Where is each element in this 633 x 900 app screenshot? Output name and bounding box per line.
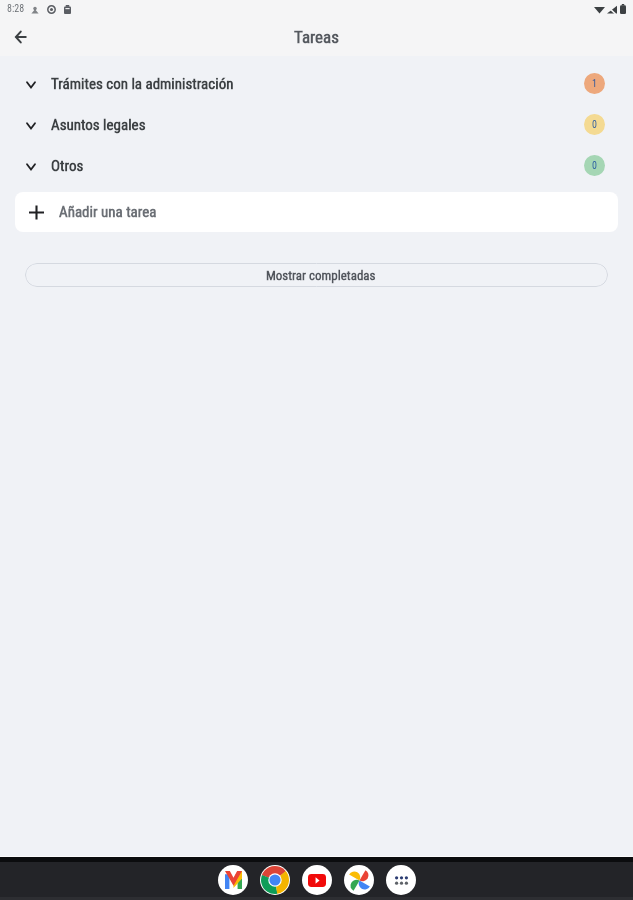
button[interactable]: Gmail [218, 865, 248, 895]
button[interactable]: Trámites con la administración [0, 63, 633, 104]
staticText: Mostrar completadas [266, 268, 376, 283]
staticText: Asuntos legales [51, 116, 146, 134]
button[interactable]: Mostrar completadas [25, 263, 608, 287]
button[interactable]: Back [1, 17, 41, 57]
staticText: 0 [592, 119, 597, 131]
staticText: 1 [592, 78, 597, 90]
button[interactable]: Chrome [260, 865, 290, 895]
button[interactable]: Añadir una tarea [15, 192, 618, 232]
staticText: Otros [51, 157, 84, 175]
button[interactable]: All apps [386, 865, 416, 895]
button[interactable]: YouTube [302, 865, 332, 895]
staticText: Tareas [294, 27, 339, 47]
button[interactable]: Google Photos [344, 865, 374, 895]
staticText: 0 [592, 160, 597, 172]
staticText: Añadir una tarea [59, 203, 157, 221]
staticText: Trámites con la administración [51, 75, 234, 93]
button[interactable]: Asuntos legales [0, 104, 633, 145]
button[interactable]: Otros [0, 145, 633, 186]
staticText: 8:28 [7, 3, 25, 15]
